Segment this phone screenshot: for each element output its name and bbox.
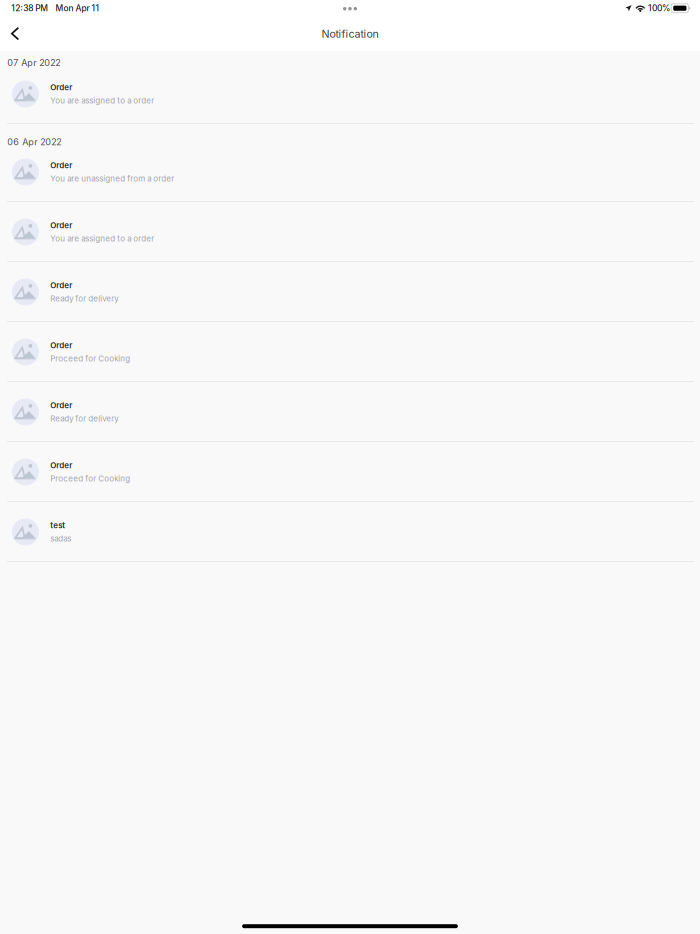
button[interactable]: Order bbox=[0, 202, 700, 262]
button[interactable]: Order bbox=[0, 322, 700, 382]
button[interactable]: Order bbox=[0, 142, 700, 202]
staticText: Order bbox=[50, 400, 72, 410]
staticText: Order bbox=[50, 82, 72, 92]
staticText: Order bbox=[50, 340, 72, 350]
staticText: 06 Apr 2022 bbox=[7, 137, 61, 147]
staticText: Order bbox=[50, 460, 72, 470]
staticText: sadas bbox=[50, 534, 71, 543]
staticText: 100% bbox=[648, 3, 670, 13]
staticText: 12:38 PM bbox=[11, 3, 48, 13]
button[interactable]: Order bbox=[0, 262, 700, 322]
staticText: Order bbox=[50, 280, 72, 290]
staticText: You are assigned to a order bbox=[50, 234, 154, 243]
staticText: Mon Apr 11 bbox=[55, 3, 99, 13]
staticText: Ready for delivery bbox=[50, 294, 118, 303]
staticText: Proceed for Cooking bbox=[50, 474, 130, 483]
staticText: 07 Apr 2022 bbox=[7, 57, 60, 68]
staticText: Order bbox=[50, 220, 72, 230]
button[interactable]: Back bbox=[5, 20, 26, 51]
staticText: Proceed for Cooking bbox=[50, 354, 130, 363]
staticText: Notification bbox=[321, 27, 378, 40]
button[interactable]: Order bbox=[0, 442, 700, 502]
staticText: You are assigned to a order bbox=[50, 96, 154, 105]
button[interactable]: Order bbox=[0, 64, 700, 124]
staticText: You are unassigned from a order bbox=[50, 174, 174, 183]
staticText: Ready for delivery bbox=[50, 414, 118, 423]
staticText: Order bbox=[50, 160, 72, 170]
staticText: test bbox=[50, 520, 65, 530]
button[interactable]: Order bbox=[0, 382, 700, 442]
button[interactable]: test bbox=[0, 502, 700, 562]
